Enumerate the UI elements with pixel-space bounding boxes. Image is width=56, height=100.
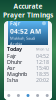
- staticText: Prayer Timings: [3, 10, 53, 19]
- staticText: 04:52: [36, 52, 49, 60]
- button[interactable]: Asr: [4, 65, 52, 71]
- button[interactable]: Tab 3: [23, 91, 33, 100]
- button[interactable]: Tab 4: [33, 91, 42, 100]
- button[interactable]: Dhuhr: [4, 59, 52, 65]
- staticText: Isha: [7, 76, 18, 84]
- staticText: 18:35: [36, 70, 49, 78]
- staticText: Dhuhr: [7, 58, 22, 66]
- button[interactable]: Tab 2: [14, 91, 23, 100]
- staticText: 20:02: [36, 76, 49, 84]
- staticText: Asr: [7, 64, 15, 72]
- staticText: Fajr: [10, 20, 20, 27]
- staticText: Accurate: [13, 2, 42, 10]
- button[interactable]: Fajr: [8, 18, 48, 48]
- button[interactable]: Maghrib: [4, 71, 52, 77]
- button[interactable]: Tab 1: [4, 91, 14, 100]
- staticText: 12:18: [36, 58, 49, 66]
- staticText: Makkah, Saudi Arabia: [10, 36, 35, 46]
- staticText: Today: [7, 45, 22, 53]
- staticText: 15:40: [36, 64, 49, 72]
- staticText: Fajr: [7, 52, 16, 60]
- staticText: Maghrib: [7, 70, 27, 78]
- staticText: 04:52 AM: [10, 27, 41, 36]
- button[interactable]: Isha: [4, 77, 52, 83]
- staticText: Mon 12: [36, 46, 49, 52]
- button[interactable]: Fajr: [4, 53, 52, 59]
- button[interactable]: Tab 5: [42, 91, 52, 100]
